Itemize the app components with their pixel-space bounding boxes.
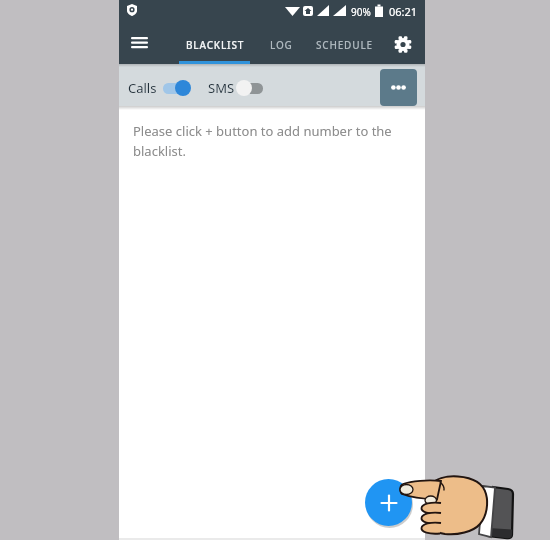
staticText: Please click + button to add number to t… (133, 122, 413, 160)
staticText: Calls (128, 79, 157, 97)
staticText: LOG (270, 38, 293, 52)
button[interactable] (387, 30, 419, 58)
button[interactable] (380, 69, 417, 106)
button[interactable]: LOG (259, 28, 303, 61)
button[interactable] (159, 74, 197, 100)
button[interactable]: SCHEDULE (309, 28, 379, 61)
button[interactable] (365, 479, 412, 526)
staticText: BLACKLIST (186, 38, 245, 52)
button[interactable] (125, 30, 155, 56)
staticText: 90% (351, 5, 371, 19)
staticText: 06:21 (389, 4, 418, 19)
staticText: SMS (208, 79, 235, 97)
button[interactable]: BLACKLIST (179, 28, 251, 61)
staticText: SCHEDULE (316, 38, 373, 52)
button[interactable] (231, 74, 269, 100)
